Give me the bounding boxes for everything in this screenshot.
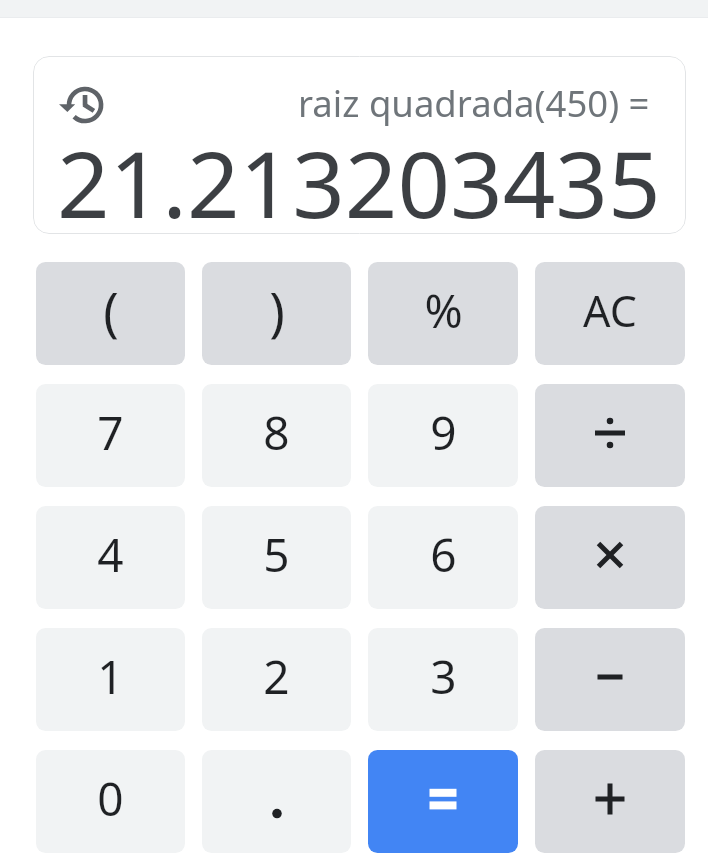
staticText: ): [269, 275, 285, 346]
button[interactable]: Equals: [368, 750, 518, 853]
staticText: 3: [430, 645, 457, 708]
button[interactable]: 3: [368, 628, 518, 731]
button[interactable]: Multiply: [535, 506, 685, 609]
button[interactable]: History: [56, 79, 108, 131]
button[interactable]: 9: [368, 384, 518, 487]
button[interactable]: %: [368, 262, 518, 365]
button[interactable]: Add: [535, 750, 685, 853]
button[interactable]: 8: [202, 384, 351, 487]
staticText: 9: [430, 401, 457, 464]
staticText: 6: [430, 523, 457, 586]
button[interactable]: 5: [202, 506, 351, 609]
button[interactable]: Divide: [535, 384, 685, 487]
button[interactable]: 4: [36, 506, 185, 609]
button[interactable]: 1: [36, 628, 185, 731]
button[interactable]: AC: [535, 262, 685, 365]
staticText: AC: [583, 281, 637, 340]
staticText: %: [424, 279, 463, 342]
staticText: raiz quadrada(450) =: [298, 78, 650, 128]
staticText: 8: [263, 401, 290, 464]
staticText: 4: [97, 523, 124, 586]
button[interactable]: ): [202, 262, 351, 365]
button[interactable]: Decimal point: [202, 750, 351, 853]
button[interactable]: (: [36, 262, 185, 365]
button[interactable]: 2: [202, 628, 351, 731]
button[interactable]: 0: [36, 750, 185, 853]
staticText: (: [103, 275, 119, 346]
button[interactable]: 6: [368, 506, 518, 609]
staticText: 5: [263, 523, 290, 586]
staticText: 0: [97, 767, 124, 830]
staticText: 1: [97, 645, 124, 708]
staticText: 2: [263, 645, 290, 708]
staticText: 21.213203435: [57, 120, 661, 234]
button[interactable]: Subtract: [535, 628, 685, 731]
button[interactable]: 7: [36, 384, 185, 487]
staticText: 7: [97, 401, 124, 464]
